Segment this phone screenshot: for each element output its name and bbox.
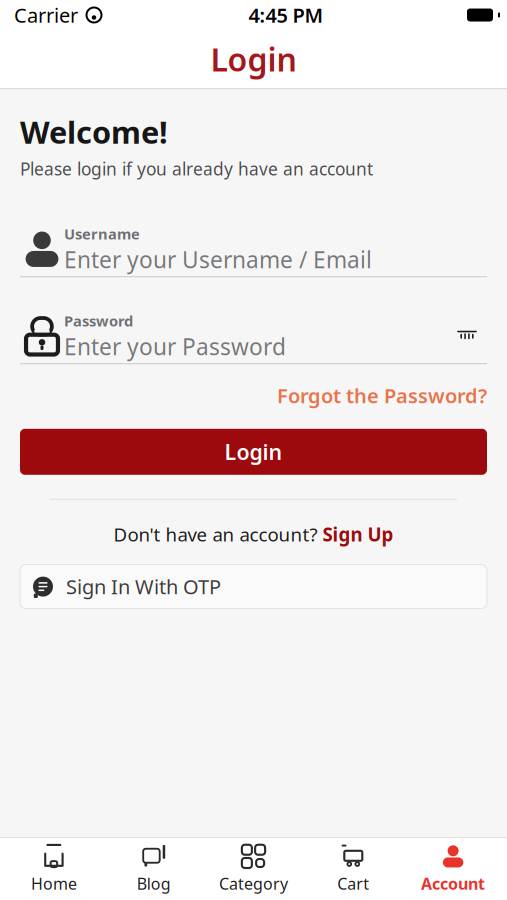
staticText: Please login if you already have an acco… [20, 157, 373, 180]
button[interactable]: Forgot the Password? [277, 376, 487, 415]
staticText: 4:45 PM [248, 2, 323, 28]
button[interactable]: Blog [104, 836, 204, 900]
staticText: Welcome! [20, 111, 168, 152]
button[interactable]: Home [4, 836, 104, 900]
button[interactable]: Account [403, 836, 503, 900]
staticText: Category [219, 873, 288, 894]
staticText: Cart [337, 873, 369, 894]
staticText: Enter your Password [64, 331, 286, 361]
button[interactable]: Sign In With OTP [20, 565, 487, 609]
staticText: Username [64, 224, 140, 243]
button[interactable]: Category [204, 836, 303, 900]
staticText: Enter your Username / Email [64, 244, 372, 274]
button[interactable]: Login [20, 429, 487, 475]
staticText: Password [64, 311, 133, 330]
staticText: Blog [137, 873, 171, 894]
staticText: Home [31, 873, 77, 894]
staticText: Carrier [14, 2, 78, 28]
button[interactable]: Don't have an account? [0, 516, 507, 553]
button[interactable]: Show password [447, 314, 487, 358]
staticText: Account [421, 873, 485, 894]
staticText: Login [224, 438, 282, 466]
staticText: Sign In With OTP [66, 573, 221, 600]
button[interactable]: Cart [303, 836, 403, 900]
staticText: Don't have an account? [113, 522, 317, 547]
staticText: Sign Up [322, 522, 393, 547]
staticText: Login [210, 38, 296, 80]
staticText: Forgot the Password? [277, 382, 487, 409]
